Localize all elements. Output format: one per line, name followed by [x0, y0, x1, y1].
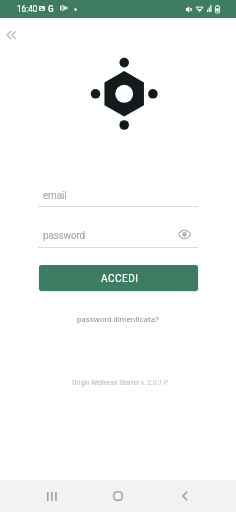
button[interactable]: Back: [169, 480, 201, 512]
button[interactable]: password dimenticata?: [70, 310, 166, 328]
staticText: 16:40: [17, 4, 38, 14]
staticText: G: [48, 4, 54, 14]
staticText: Origin Wellness Starter v. 2.0.7 P: [72, 378, 168, 387]
staticText: password dimenticata?: [77, 315, 159, 324]
button[interactable]: Home: [102, 480, 134, 512]
button[interactable]: Show password: [175, 225, 193, 243]
button[interactable]: ACCEDI: [39, 265, 198, 291]
button[interactable]: Recent apps: [36, 480, 68, 512]
staticText: email: [43, 190, 67, 202]
staticText: ACCEDI: [101, 273, 139, 285]
staticText: password: [43, 230, 85, 242]
button[interactable]: Back: [0, 23, 24, 47]
